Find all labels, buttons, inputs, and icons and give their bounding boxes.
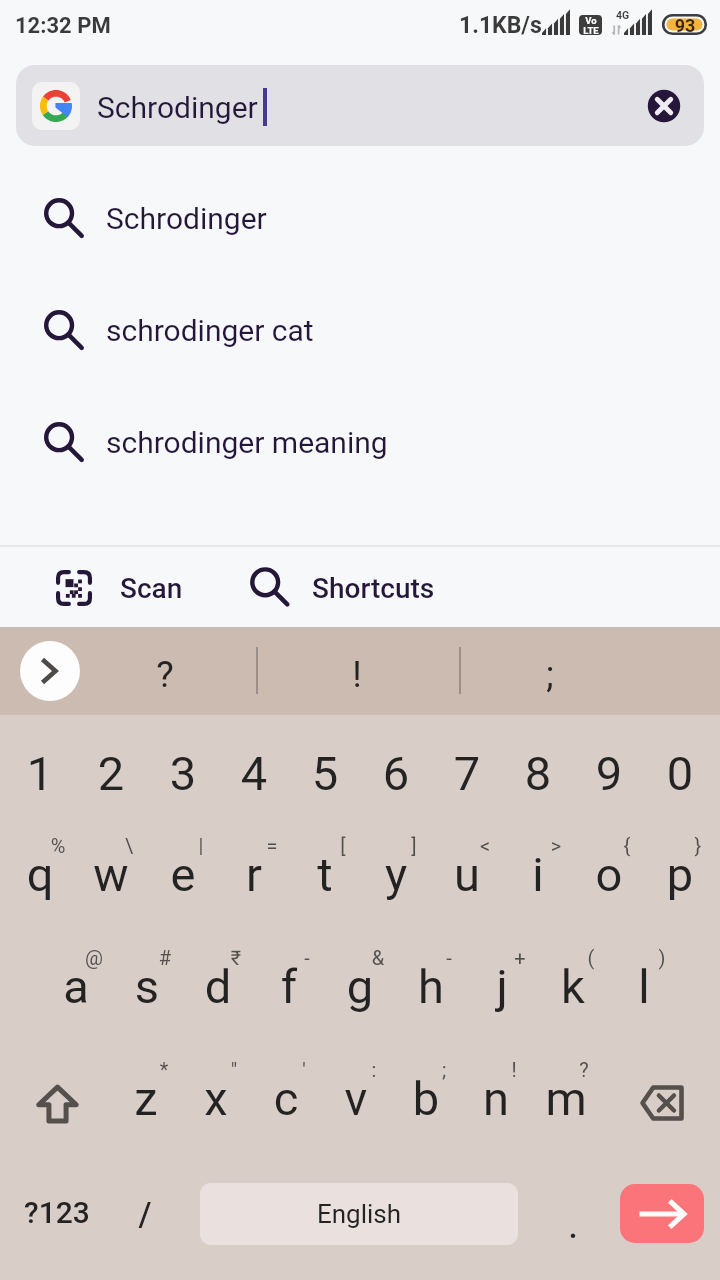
staticText: : xyxy=(344,1058,404,1081)
staticText: % xyxy=(28,834,88,857)
staticText: English xyxy=(259,1199,459,1229)
staticText: 2 xyxy=(66,746,156,801)
staticText: 1 xyxy=(0,746,85,801)
button[interactable] xyxy=(5,716,76,804)
button[interactable] xyxy=(254,932,325,1032)
staticText: * xyxy=(134,1058,194,1081)
button[interactable] xyxy=(147,820,218,920)
staticText: b xyxy=(381,1071,471,1126)
staticText: ? xyxy=(554,1058,614,1081)
button[interactable] xyxy=(644,716,715,804)
staticText: > xyxy=(526,834,586,857)
staticText: 3 xyxy=(138,746,228,801)
staticText: schrodinger cat xyxy=(106,313,314,348)
button[interactable] xyxy=(40,932,111,1032)
button[interactable] xyxy=(181,1044,251,1144)
staticText: & xyxy=(348,946,408,969)
button[interactable] xyxy=(454,627,646,715)
staticText: + xyxy=(490,946,550,969)
button[interactable] xyxy=(289,716,360,804)
button[interactable] xyxy=(261,627,453,715)
staticText: ] xyxy=(384,834,444,857)
staticText: 8 xyxy=(493,746,583,801)
button[interactable] xyxy=(112,1160,180,1270)
staticText: 9 xyxy=(564,746,654,801)
button[interactable] xyxy=(16,65,704,146)
button[interactable]: Search xyxy=(620,1184,704,1243)
staticText: ' xyxy=(274,1058,334,1081)
button[interactable] xyxy=(325,932,396,1032)
button[interactable] xyxy=(289,820,360,920)
staticText: m xyxy=(521,1071,611,1126)
staticText: o xyxy=(564,847,654,902)
button[interactable] xyxy=(76,820,147,920)
staticText: 12:32 PM xyxy=(15,13,111,39)
button[interactable] xyxy=(360,716,431,804)
button[interactable] xyxy=(218,820,289,920)
staticText: # xyxy=(135,946,195,969)
button[interactable]: Schrodinger xyxy=(0,173,720,285)
button[interactable] xyxy=(431,820,502,920)
button[interactable] xyxy=(183,932,254,1032)
button[interactable] xyxy=(538,932,609,1032)
button[interactable] xyxy=(396,932,467,1032)
staticText: 6 xyxy=(351,746,441,801)
button[interactable]: schrodinger cat xyxy=(0,285,720,397)
staticText: r xyxy=(209,847,299,902)
staticText: 7 xyxy=(422,746,512,801)
button[interactable]: Shortcuts xyxy=(230,551,455,623)
staticText: ₹ xyxy=(206,946,266,969)
button[interactable] xyxy=(573,716,644,804)
staticText: Shortcuts xyxy=(312,572,435,605)
button[interactable] xyxy=(76,716,147,804)
staticText: ! xyxy=(484,1058,544,1081)
button[interactable] xyxy=(6,1160,110,1270)
button[interactable] xyxy=(467,932,538,1032)
button[interactable] xyxy=(111,932,182,1032)
staticText: j xyxy=(457,959,547,1014)
staticText: h xyxy=(386,959,476,1014)
button[interactable] xyxy=(502,716,573,804)
staticText: < xyxy=(455,834,515,857)
staticText: @ xyxy=(64,946,124,969)
staticText: LTE xyxy=(571,25,611,36)
staticText: - xyxy=(277,946,337,969)
button[interactable] xyxy=(431,716,502,804)
button[interactable]: schrodinger meaning xyxy=(0,397,720,509)
button[interactable] xyxy=(218,716,289,804)
button[interactable] xyxy=(147,716,218,804)
staticText: d xyxy=(173,959,263,1014)
button[interactable] xyxy=(573,820,644,920)
staticText: 4 xyxy=(209,746,299,801)
staticText: | xyxy=(171,834,231,857)
staticText: ) xyxy=(632,946,692,969)
button[interactable] xyxy=(251,1044,321,1144)
button[interactable] xyxy=(502,820,573,920)
button[interactable]: Shift xyxy=(14,1044,102,1144)
staticText: \ xyxy=(99,834,159,857)
button[interactable] xyxy=(540,1160,608,1270)
button[interactable] xyxy=(5,820,76,920)
staticText: k xyxy=(528,959,618,1014)
staticText: " xyxy=(204,1058,264,1081)
button[interactable] xyxy=(609,932,680,1032)
staticText: q xyxy=(0,847,85,902)
staticText: n xyxy=(451,1071,541,1126)
staticText: ; xyxy=(414,1058,474,1081)
button[interactable] xyxy=(531,1044,601,1144)
button[interactable] xyxy=(461,1044,531,1144)
button[interactable] xyxy=(360,820,431,920)
staticText: [ xyxy=(313,834,373,857)
staticText: c xyxy=(241,1071,331,1126)
button[interactable] xyxy=(200,1183,518,1245)
button[interactable]: More suggestions xyxy=(20,641,80,701)
button[interactable] xyxy=(321,1044,391,1144)
button[interactable] xyxy=(69,627,261,715)
button[interactable] xyxy=(644,820,715,920)
button[interactable] xyxy=(391,1044,461,1144)
button[interactable]: Clear search xyxy=(643,85,685,127)
staticText: ? xyxy=(105,653,225,696)
button[interactable]: Scan xyxy=(30,551,200,623)
button[interactable] xyxy=(111,1044,181,1144)
button[interactable]: Backspace xyxy=(618,1044,706,1144)
